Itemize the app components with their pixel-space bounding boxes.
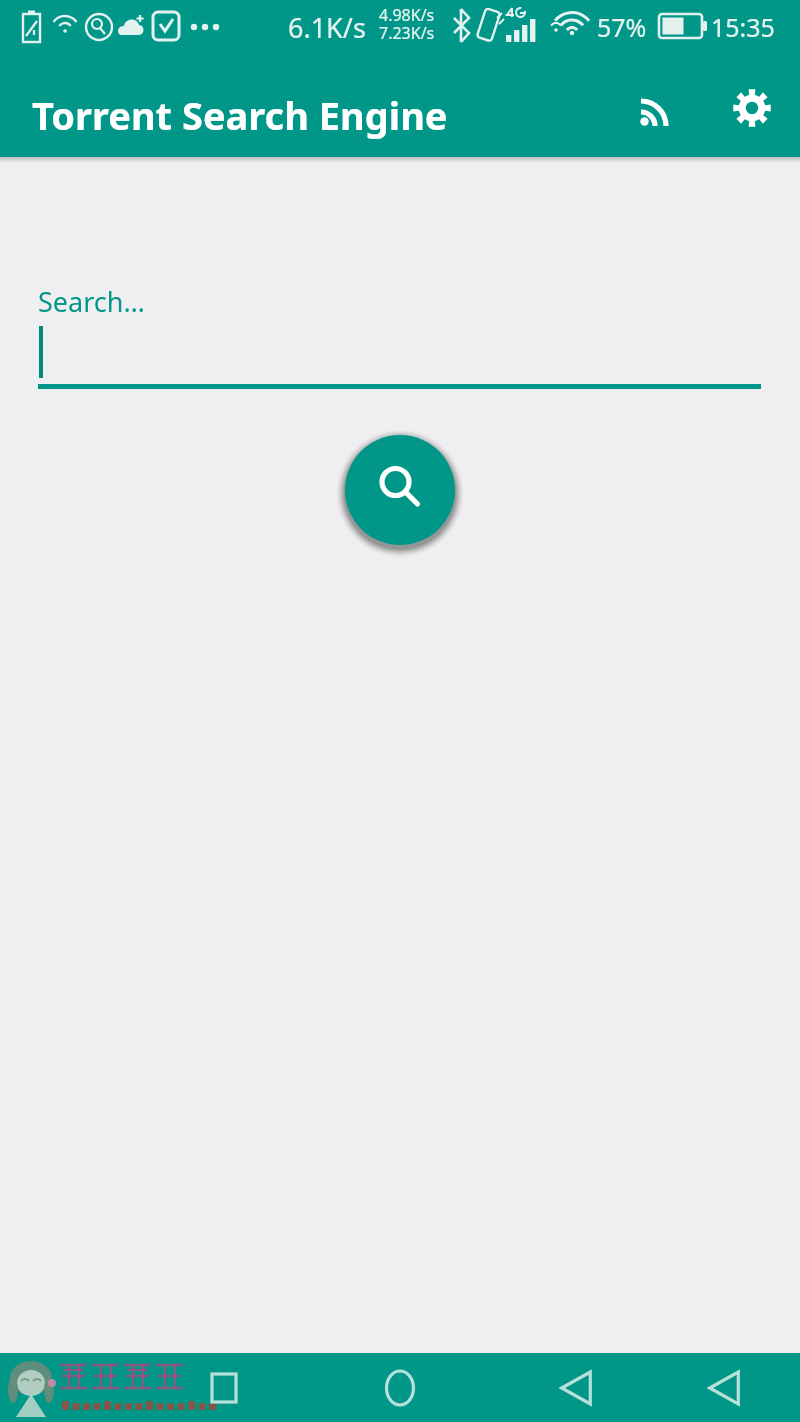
- button[interactable]: Settings: [714, 84, 790, 132]
- staticText: 57%: [597, 10, 647, 44]
- staticText: 6.1K/s: [288, 9, 366, 46]
- button[interactable]: Search…: [38, 283, 762, 393]
- button[interactable]: Back: [532, 1353, 620, 1422]
- staticText: Torrent Search Engine: [32, 89, 448, 141]
- staticText: Search…: [38, 283, 145, 320]
- button[interactable]: Home: [356, 1353, 444, 1422]
- button[interactable]: RSS feeds: [620, 84, 696, 132]
- staticText: 15:35: [711, 10, 775, 44]
- button[interactable]: Back: [680, 1353, 768, 1422]
- staticText: 7.23K/s: [379, 22, 435, 44]
- staticText: 4.98K/s: [379, 4, 435, 26]
- button[interactable]: Search: [345, 435, 455, 545]
- button[interactable]: Recent apps: [180, 1353, 268, 1422]
